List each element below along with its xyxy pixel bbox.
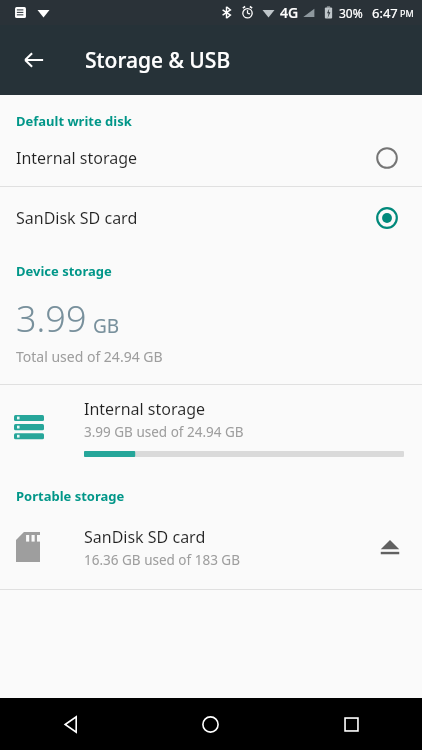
staticText: Total used of 24.94 GB bbox=[16, 347, 163, 366]
staticText: GB bbox=[93, 313, 120, 339]
staticText: Portable storage bbox=[16, 487, 125, 505]
staticText: Internal storage bbox=[84, 398, 206, 420]
staticText: Internal storage bbox=[16, 147, 376, 169]
button[interactable]: Recent apps bbox=[281, 698, 422, 750]
staticText: 3.99 GB used of 24.94 GB bbox=[84, 423, 244, 441]
button[interactable]: SanDisk SD card bbox=[0, 187, 422, 248]
button[interactable]: Eject SD card bbox=[368, 525, 412, 569]
button[interactable]: Internal storage bbox=[0, 385, 422, 469]
staticText: Default write disk bbox=[16, 112, 132, 130]
staticText: 3.99 bbox=[16, 294, 87, 343]
staticText: SanDisk SD card bbox=[16, 207, 376, 229]
button[interactable]: Home bbox=[140, 698, 281, 750]
button[interactable]: Internal storage bbox=[0, 130, 422, 186]
button[interactable]: Back bbox=[10, 36, 58, 84]
staticText: 30% bbox=[339, 5, 363, 21]
staticText: 16.36 GB used of 183 GB bbox=[84, 551, 240, 569]
staticText: 6:47 bbox=[372, 4, 398, 22]
staticText: 4G bbox=[280, 3, 299, 22]
button[interactable]: SanDisk SD card bbox=[0, 517, 422, 577]
staticText: Storage & USB bbox=[85, 46, 231, 75]
button[interactable]: Back bbox=[0, 698, 140, 750]
staticText: Device storage bbox=[16, 262, 112, 280]
staticText: PM bbox=[400, 7, 414, 19]
staticText: SanDisk SD card bbox=[84, 526, 206, 548]
